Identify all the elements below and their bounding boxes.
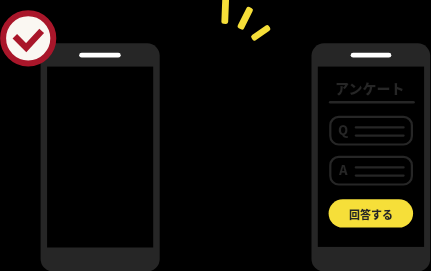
staticText: Q <box>338 120 349 138</box>
staticText: A <box>339 160 348 178</box>
staticText: 回答する <box>349 206 393 222</box>
button[interactable]: 回答する <box>328 199 413 228</box>
staticText: アンケート <box>335 78 405 96</box>
